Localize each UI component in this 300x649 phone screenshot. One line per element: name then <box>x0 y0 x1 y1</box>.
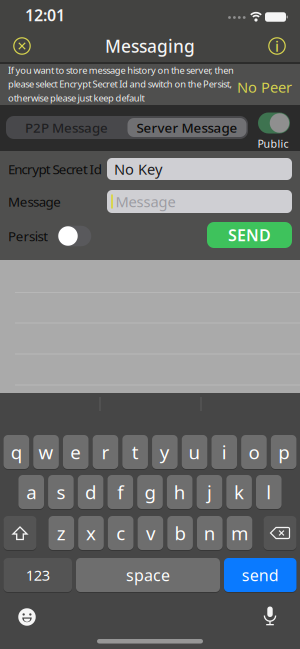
staticText: Message <box>8 193 61 210</box>
staticText: 12:01 <box>25 4 65 26</box>
button[interactable]: space <box>76 557 220 592</box>
staticText: a <box>26 480 36 504</box>
staticText: i <box>222 440 227 464</box>
button[interactable]: z <box>48 515 74 550</box>
button[interactable]: s <box>48 474 74 509</box>
staticText: e <box>70 440 81 464</box>
staticText: s <box>56 480 65 504</box>
button[interactable]: 123 <box>3 557 72 592</box>
staticText: y <box>160 440 170 464</box>
staticText: h <box>174 480 186 504</box>
staticText: d <box>85 480 96 504</box>
staticText: Messaging <box>105 34 195 57</box>
button[interactable]: l <box>256 474 282 509</box>
staticText: Server Message <box>136 119 237 136</box>
button[interactable]: Dictate <box>262 606 278 625</box>
button[interactable]: Emoji <box>18 608 36 626</box>
button[interactable]: Info <box>268 37 286 55</box>
button[interactable]: b <box>167 515 193 550</box>
staticText: j <box>207 480 212 504</box>
staticText: w <box>39 440 54 464</box>
button[interactable]: q <box>4 434 29 469</box>
button[interactable]: r <box>93 434 118 469</box>
staticText: b <box>175 521 186 545</box>
staticText: please select Encrypt Secret Id and swit… <box>8 78 233 90</box>
button[interactable]: v <box>138 515 163 550</box>
button[interactable]: n <box>197 515 223 550</box>
staticText: k <box>234 480 244 504</box>
staticText: x <box>86 521 96 545</box>
staticText: v <box>146 521 155 545</box>
staticText: o <box>248 440 259 464</box>
button[interactable]: c <box>108 515 133 550</box>
button[interactable]: d <box>78 474 103 509</box>
button[interactable]: m <box>227 515 252 550</box>
staticText: n <box>204 521 216 545</box>
button[interactable]: Public <box>258 112 290 133</box>
button[interactable]: f <box>107 474 133 509</box>
button[interactable]: Server Message <box>127 118 246 137</box>
button[interactable]: send <box>224 557 296 592</box>
staticText: u <box>189 440 201 464</box>
staticText: send <box>242 564 279 586</box>
staticText: SEND <box>228 224 271 246</box>
staticText: otherwise please just keep default <box>8 92 144 104</box>
staticText: c <box>116 521 125 545</box>
staticText: l <box>266 480 271 504</box>
button[interactable]: SEND <box>207 222 292 248</box>
staticText: q <box>11 440 22 464</box>
button[interactable]: p <box>271 434 296 469</box>
button[interactable]: o <box>241 434 267 469</box>
staticText: t <box>132 440 139 464</box>
button[interactable]: i <box>211 434 237 469</box>
staticText: z <box>57 521 66 545</box>
staticText: No Key <box>114 159 162 179</box>
staticText: Public <box>257 136 288 151</box>
staticText: If you want to store message history on … <box>8 64 234 76</box>
staticText: space <box>126 564 170 586</box>
button[interactable]: e <box>63 434 89 469</box>
button[interactable]: y <box>152 434 178 469</box>
staticText: p <box>278 440 289 464</box>
staticText: Encrypt Secret Id <box>8 160 102 178</box>
button[interactable]: j <box>197 474 222 509</box>
button[interactable]: t <box>122 434 148 469</box>
staticText: Message <box>115 192 175 211</box>
button[interactable]: k <box>226 474 252 509</box>
button[interactable]: w <box>33 434 59 469</box>
button[interactable]: x <box>78 515 104 550</box>
button[interactable]: Delete <box>263 515 296 550</box>
button[interactable]: Close <box>13 37 31 55</box>
staticText: g <box>144 480 155 504</box>
button[interactable]: Persist <box>58 226 91 246</box>
button[interactable]: h <box>167 474 192 509</box>
button[interactable]: Shift <box>3 515 36 550</box>
staticText: Persist <box>8 227 48 245</box>
staticText: f <box>117 480 123 504</box>
staticText: No Peer <box>237 77 292 97</box>
button[interactable]: u <box>182 434 207 469</box>
staticText: 123 <box>26 565 50 585</box>
staticText: m <box>231 521 248 545</box>
staticText: P2P Message <box>25 119 108 136</box>
button[interactable]: P2P Message <box>6 116 126 139</box>
staticText: i <box>275 36 279 56</box>
button[interactable]: a <box>18 474 44 509</box>
button[interactable]: g <box>137 474 163 509</box>
staticText: r <box>101 440 109 464</box>
